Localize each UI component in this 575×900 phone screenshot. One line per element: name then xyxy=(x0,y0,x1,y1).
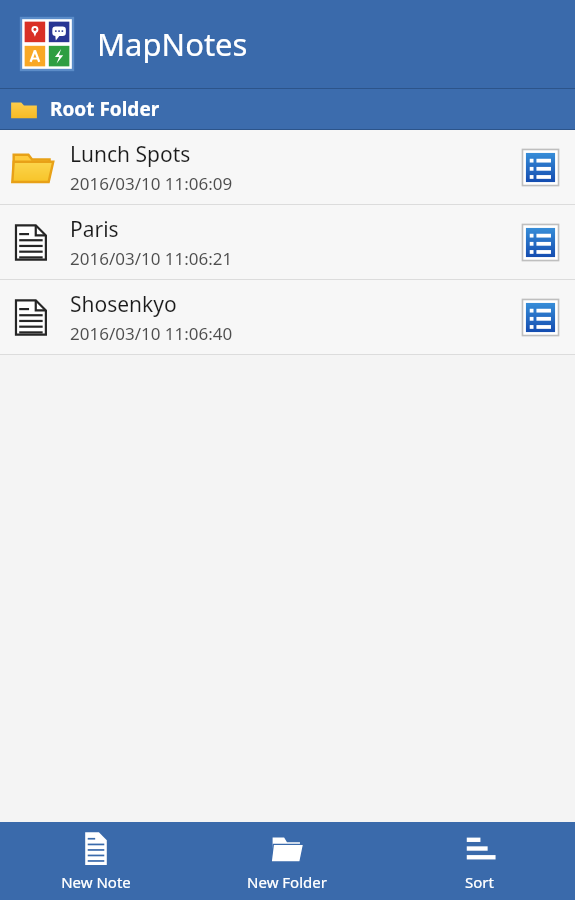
button[interactable]: Lunch Spots xyxy=(0,130,575,205)
staticText: 2016/03/10 11:06:09 xyxy=(70,172,233,195)
button[interactable]: New Note xyxy=(0,822,191,900)
button[interactable]: MapNotes app icon xyxy=(21,18,73,70)
staticText: MapNotes xyxy=(97,23,248,65)
button[interactable]: Shosenkyo xyxy=(0,280,575,355)
staticText: New Folder xyxy=(247,872,327,892)
button[interactable]: New Folder xyxy=(191,822,383,900)
button[interactable]: Show list for Shosenkyo xyxy=(520,297,561,338)
staticText: 2016/03/10 11:06:40 xyxy=(70,322,233,345)
staticText: Shosenkyo xyxy=(70,290,177,319)
button[interactable]: Show list for Lunch Spots xyxy=(520,147,561,188)
staticText: New Note xyxy=(61,872,131,892)
staticText: Sort xyxy=(465,872,494,892)
button[interactable]: Paris xyxy=(0,205,575,280)
button[interactable]: Sort xyxy=(383,822,575,900)
staticText: 2016/03/10 11:06:21 xyxy=(70,247,233,270)
button[interactable]: Show list for Paris xyxy=(520,222,561,263)
staticText: Root Folder xyxy=(50,96,160,122)
staticText: Paris xyxy=(70,215,119,244)
button[interactable]: Root Folder xyxy=(0,88,575,130)
staticText: Lunch Spots xyxy=(70,140,191,169)
